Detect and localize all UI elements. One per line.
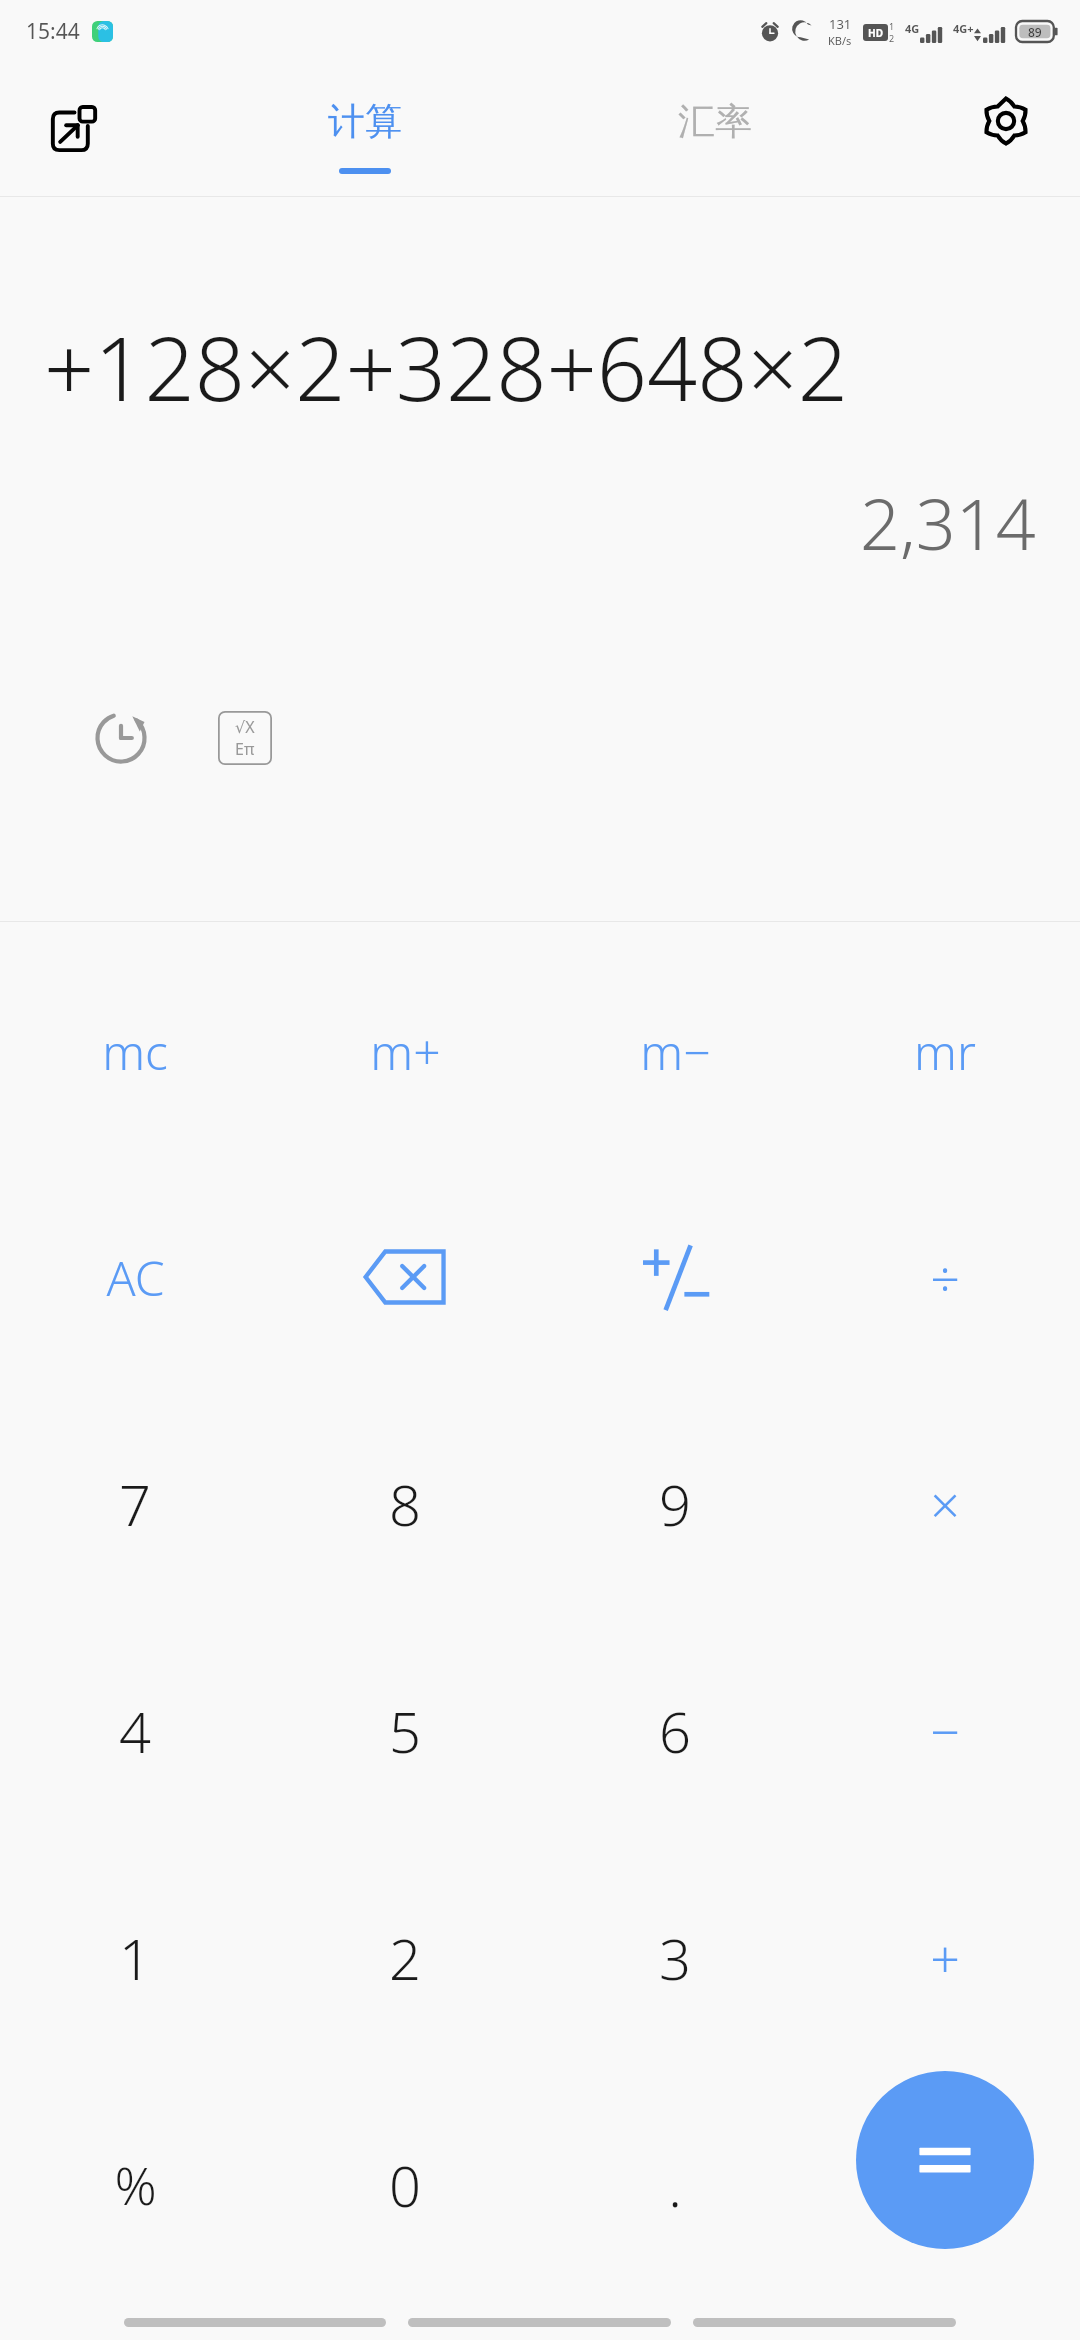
- button[interactable]: 5: [270, 1617, 540, 1844]
- staticText: 2: [889, 32, 895, 44]
- button[interactable]: 6: [540, 1617, 810, 1844]
- button[interactable]: Settings: [968, 83, 1044, 159]
- staticText: %: [114, 2149, 157, 2220]
- staticText: m−: [640, 1019, 711, 1084]
- button[interactable]: 8: [270, 1390, 540, 1617]
- button[interactable]: 1: [0, 1844, 270, 2071]
- staticText: +: [930, 1922, 960, 1993]
- staticText: m+: [370, 1019, 441, 1084]
- staticText: +128×2+328+648×2: [44, 307, 848, 427]
- button[interactable]: −: [810, 1617, 1080, 1844]
- staticText: 9: [659, 1466, 691, 1542]
- button[interactable]: 2: [270, 1844, 540, 2071]
- staticText: 3: [659, 1920, 691, 1996]
- staticText: ×: [930, 1468, 960, 1539]
- staticText: 4: [119, 1693, 151, 1769]
- button[interactable]: m+: [270, 938, 540, 1164]
- button[interactable]: 3: [540, 1844, 810, 2071]
- staticText: 4G: [905, 21, 920, 36]
- staticText: 15:44: [26, 17, 80, 46]
- button[interactable]: AC: [0, 1164, 270, 1390]
- staticText: ÷: [930, 1242, 960, 1313]
- staticText: 2: [389, 1920, 421, 1996]
- button[interactable]: +: [810, 1844, 1080, 2071]
- staticText: AC: [106, 1245, 165, 1310]
- staticText: √X: [235, 716, 255, 738]
- button[interactable]: History: [78, 695, 164, 781]
- button[interactable]: Scientific mode: [202, 695, 288, 781]
- button[interactable]: ×: [810, 1390, 1080, 1617]
- button[interactable]: mr: [810, 938, 1080, 1164]
- staticText: 131: [829, 15, 852, 33]
- staticText: 6: [659, 1693, 691, 1769]
- staticText: .: [668, 2147, 682, 2223]
- button[interactable]: ÷: [810, 1164, 1080, 1390]
- staticText: 1: [119, 1920, 151, 1996]
- button[interactable]: 计算: [250, 62, 480, 196]
- button[interactable]: 0: [270, 2071, 540, 2298]
- staticText: 2,314: [860, 475, 1036, 570]
- staticText: Eπ: [235, 738, 255, 760]
- staticText: 4G+: [953, 21, 974, 36]
- button[interactable]: Equals: [856, 2071, 1034, 2249]
- staticText: 计算: [328, 98, 402, 145]
- staticText: KB/s: [828, 33, 852, 48]
- button[interactable]: 汇率: [600, 62, 830, 196]
- staticText: 0: [389, 2147, 421, 2223]
- staticText: mr: [914, 1019, 976, 1084]
- staticText: 汇率: [678, 98, 752, 145]
- staticText: 5: [389, 1693, 421, 1769]
- button[interactable]: 9: [540, 1390, 810, 1617]
- staticText: 89: [1028, 24, 1042, 40]
- staticText: −: [930, 1695, 960, 1766]
- staticText: mc: [102, 1019, 168, 1084]
- button[interactable]: m−: [540, 938, 810, 1164]
- button[interactable]: Backspace: [270, 1164, 540, 1390]
- button[interactable]: .: [540, 2071, 810, 2298]
- staticText: 7: [119, 1466, 151, 1542]
- button[interactable]: Floating window: [36, 91, 112, 167]
- button[interactable]: mc: [0, 938, 270, 1164]
- button[interactable]: 7: [0, 1390, 270, 1617]
- button[interactable]: 4: [0, 1617, 270, 1844]
- staticText: 1: [889, 20, 895, 32]
- staticText: HD: [868, 26, 883, 40]
- button[interactable]: %: [0, 2071, 270, 2298]
- staticText: 8: [389, 1466, 421, 1542]
- button[interactable]: [540, 1164, 810, 1390]
